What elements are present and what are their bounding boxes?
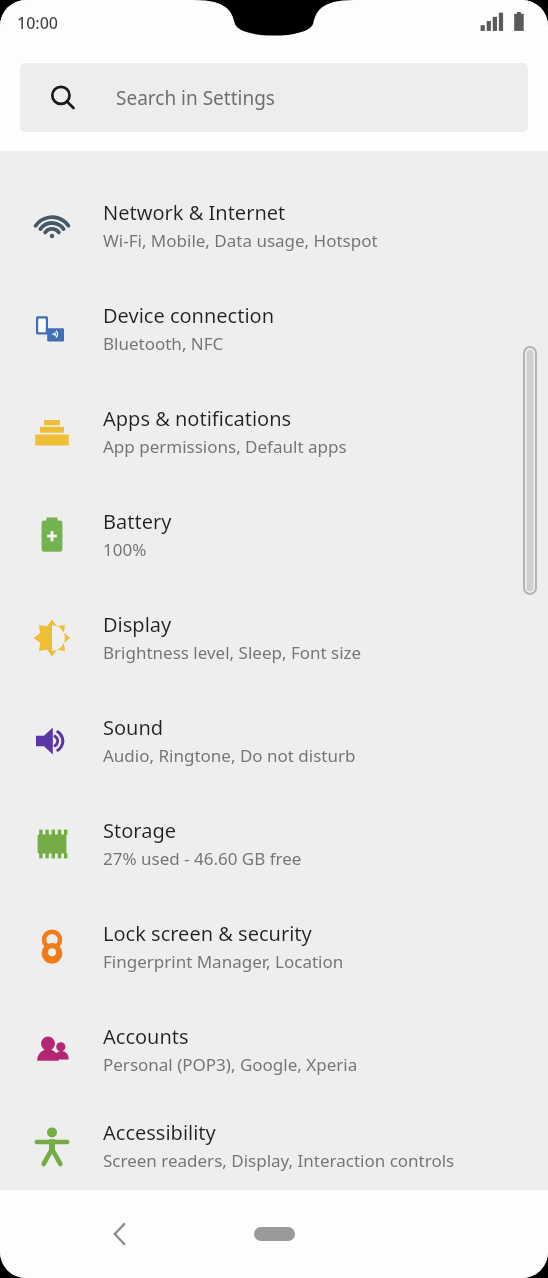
staticText: Lock screen & security (103, 920, 312, 947)
staticText: Battery (103, 508, 172, 535)
button[interactable]: Accounts (0, 998, 548, 1101)
staticText: Brightness level, Sleep, Font size (103, 641, 362, 664)
staticText: 27% used - 46.60 GB free (103, 847, 302, 870)
button[interactable]: Sound (0, 689, 548, 792)
staticText: Audio, Ringtone, Do not disturb (103, 744, 356, 767)
staticText: Sound (103, 714, 164, 741)
button[interactable]: Lock screen & security (0, 895, 548, 998)
staticText: Personal (POP3), Google, Xperia (103, 1053, 358, 1076)
staticText: Fingerprint Manager, Location (103, 950, 344, 973)
staticText: Wi-Fi, Mobile, Data usage, Hotspot (103, 229, 378, 252)
button[interactable]: Display (0, 586, 548, 689)
button[interactable]: Device connection (0, 277, 548, 380)
staticText: Apps & notifications (103, 405, 292, 432)
button[interactable]: Battery (0, 483, 548, 586)
button[interactable]: Back (94, 1208, 146, 1260)
staticText: Storage (103, 817, 176, 844)
staticText: Search in Settings (116, 85, 275, 111)
button[interactable]: Storage (0, 792, 548, 895)
button[interactable]: Home (238, 1214, 310, 1254)
button[interactable]: Accessibility (0, 1101, 548, 1190)
staticText: Display (103, 611, 172, 638)
button[interactable]: Apps & notifications (0, 380, 548, 483)
staticText: Accessibility (103, 1119, 216, 1146)
staticText: Screen readers, Display, Interaction con… (103, 1149, 455, 1172)
button[interactable]: Network & Internet (0, 174, 548, 277)
staticText: 10:00 (17, 12, 58, 34)
staticText: Accounts (103, 1023, 189, 1050)
staticText: Bluetooth, NFC (103, 332, 224, 355)
staticText: App permissions, Default apps (103, 435, 347, 458)
button[interactable]: Search in Settings (20, 63, 528, 132)
staticText: Network & Internet (103, 199, 286, 226)
staticText: 100% (103, 538, 147, 561)
staticText: Device connection (103, 302, 275, 329)
